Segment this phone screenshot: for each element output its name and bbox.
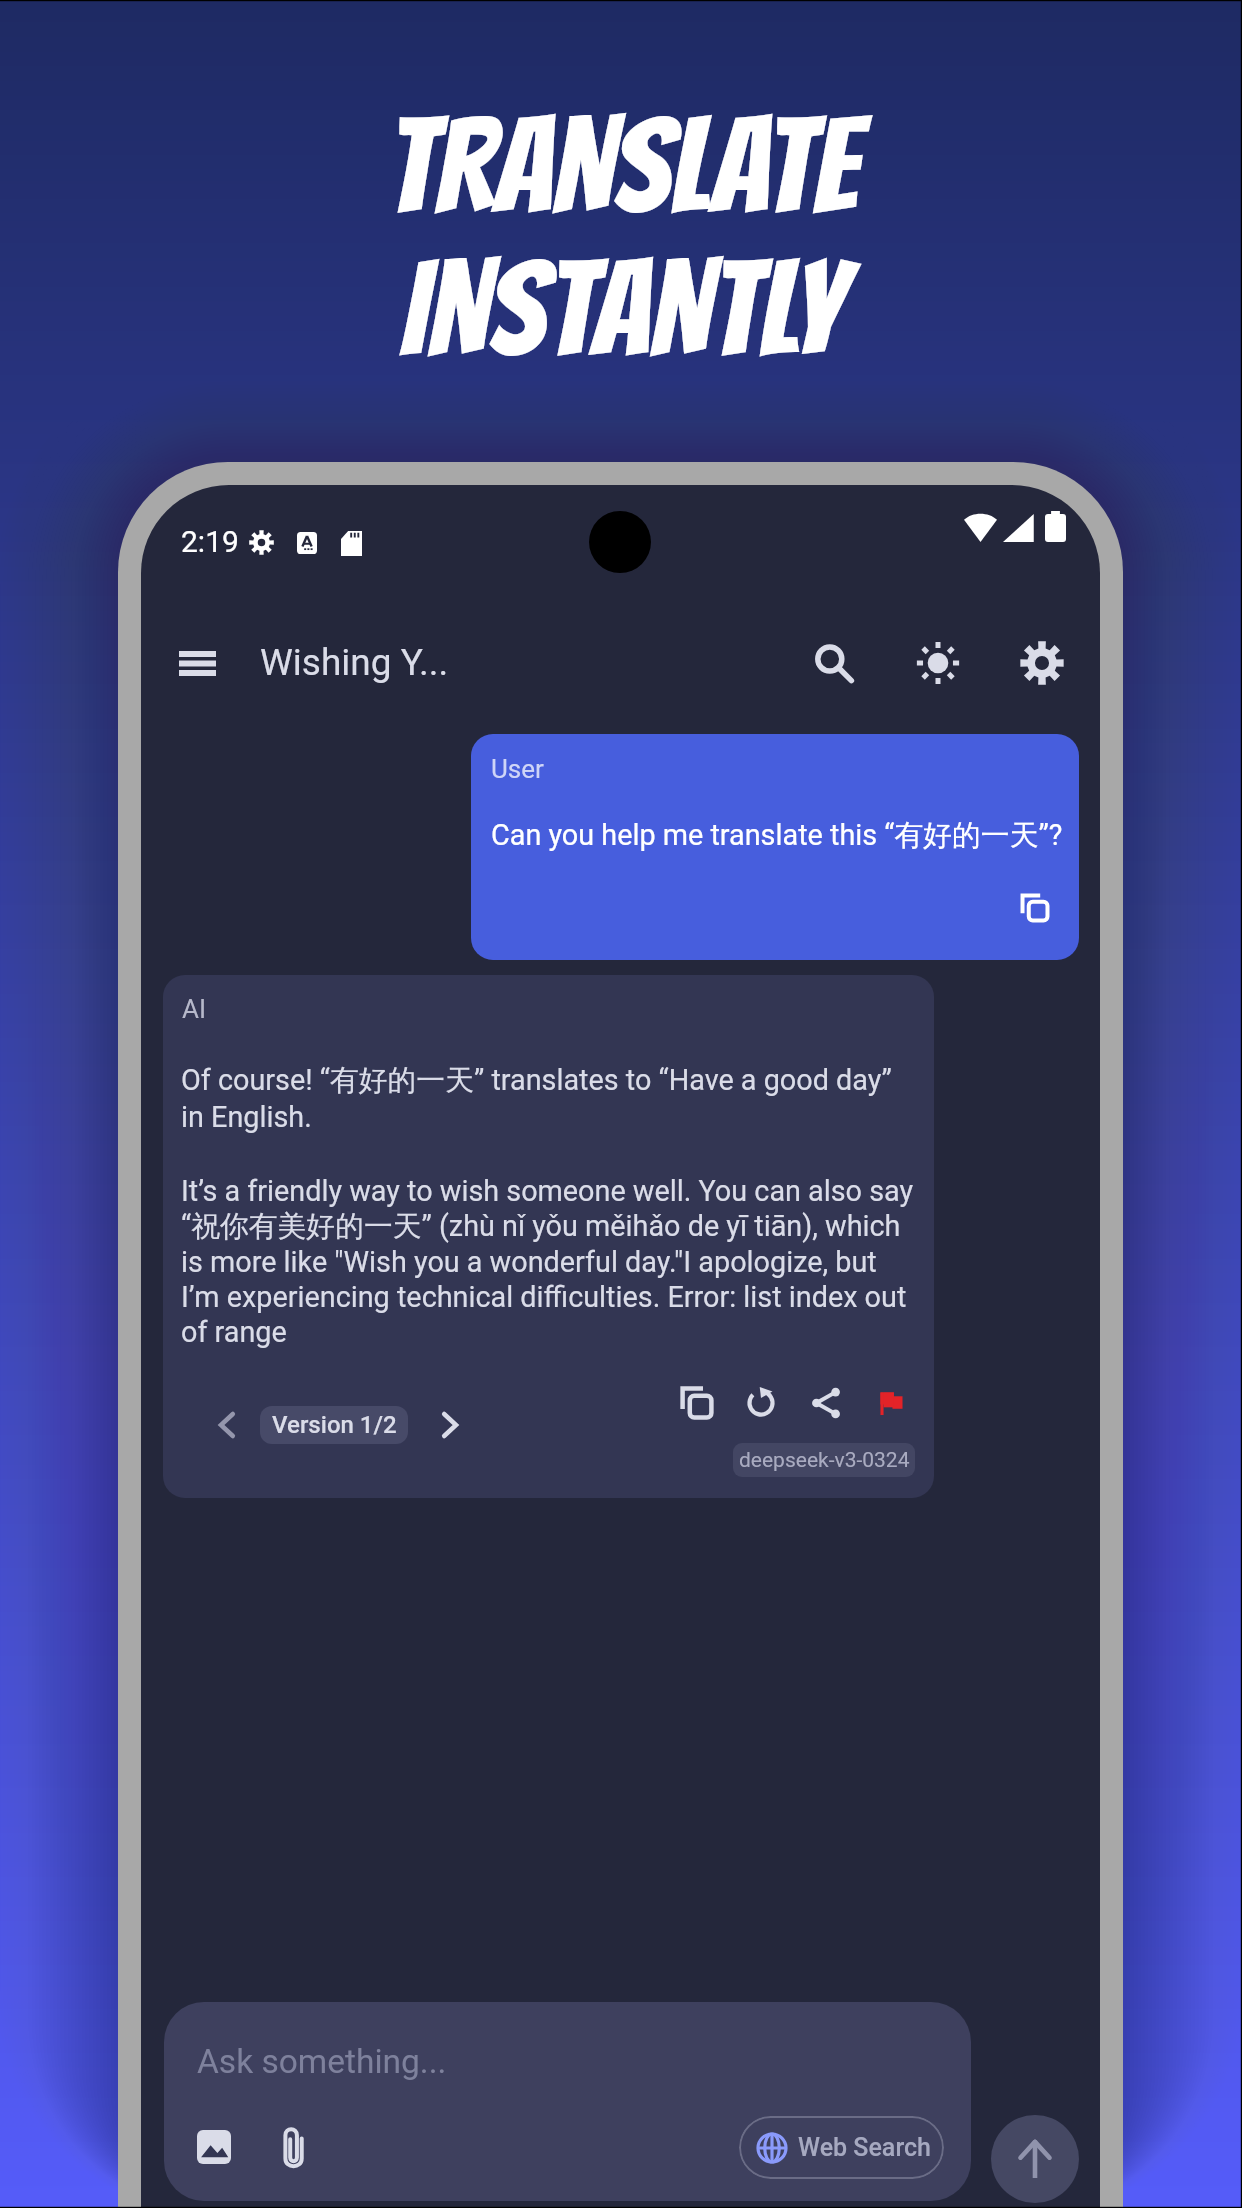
staticText: 2:19 bbox=[181, 524, 239, 559]
button[interactable]: Search bbox=[801, 631, 865, 695]
staticText: Can you help me translate this “有好的一天”? bbox=[491, 817, 1063, 853]
button[interactable]: Web Search bbox=[739, 2116, 944, 2179]
button[interactable]: AI bbox=[163, 975, 934, 1498]
button[interactable]: Version 1/2 bbox=[260, 1406, 408, 1444]
staticText: TRANSLATE bbox=[385, 95, 858, 238]
button[interactable]: Report bbox=[867, 1379, 915, 1427]
button[interactable]: Settings bbox=[1010, 631, 1074, 695]
button[interactable]: Attach file bbox=[269, 2122, 321, 2174]
button[interactable]: Send bbox=[991, 2115, 1079, 2203]
staticText: Ask something... bbox=[197, 2042, 447, 2081]
button[interactable]: Next version bbox=[427, 1403, 471, 1447]
staticText: Of course! “有好的一天” translates to “Have a… bbox=[181, 1062, 929, 1134]
button[interactable]: Menu bbox=[169, 635, 225, 691]
button[interactable]: Regenerate bbox=[737, 1379, 785, 1427]
staticText: User bbox=[491, 754, 544, 784]
staticText: It’s a friendly way to wish someone well… bbox=[181, 1174, 929, 1349]
staticText: Version 1/2 bbox=[272, 1411, 397, 1439]
button[interactable]: Share bbox=[802, 1379, 850, 1427]
staticText: INSTANTLY bbox=[400, 238, 843, 381]
button[interactable]: Add image bbox=[188, 2121, 240, 2173]
button[interactable]: Previous version bbox=[206, 1403, 250, 1447]
button[interactable]: Brightness bbox=[906, 631, 970, 695]
staticText: deepseek-v3-0324 bbox=[739, 1448, 910, 1473]
button[interactable]: Copy bbox=[673, 1379, 721, 1427]
button[interactable]: Ask something... bbox=[164, 2002, 971, 2201]
staticText: Wishing Y... bbox=[260, 641, 449, 684]
button[interactable]: Copy bbox=[1016, 889, 1054, 927]
staticText: AI bbox=[182, 994, 207, 1024]
button[interactable]: User bbox=[471, 734, 1079, 960]
staticText: Web Search bbox=[798, 2133, 931, 2162]
